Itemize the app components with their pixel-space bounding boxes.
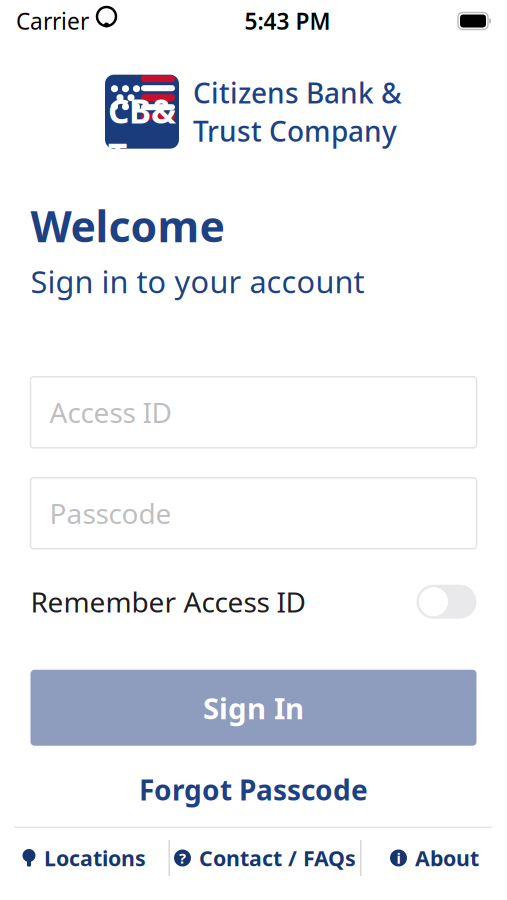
- button[interactable]: ?: [170, 828, 360, 888]
- button[interactable]: i: [361, 828, 507, 888]
- button[interactable]: Locations: [0, 828, 168, 888]
- staticText: Sign In: [203, 688, 304, 727]
- staticText: About: [415, 844, 479, 872]
- staticText: Contact / FAQs: [199, 844, 356, 872]
- staticText: Trust Company: [193, 112, 397, 149]
- button[interactable]: Passcode: [30, 478, 476, 549]
- button[interactable]: Sign In: [30, 670, 476, 746]
- staticText: i: [396, 848, 400, 868]
- staticText: 5:43 PM: [244, 6, 330, 36]
- staticText: Forgot Passcode: [139, 771, 368, 808]
- staticText: Citizens Bank &: [193, 74, 402, 111]
- staticText: ?: [179, 848, 186, 868]
- staticText: Sign in to your account: [30, 261, 364, 302]
- staticText: Access ID: [49, 394, 171, 431]
- button[interactable]: Forgot Passcode: [30, 768, 476, 812]
- staticText: CB&T: [108, 88, 176, 177]
- staticText: Remember Access ID: [30, 583, 305, 620]
- staticText: Welcome: [30, 197, 224, 254]
- button[interactable]: Remember Access ID: [30, 580, 476, 624]
- staticText: Locations: [44, 844, 146, 872]
- button[interactable]: Access ID: [30, 377, 476, 448]
- staticText: Carrier: [16, 6, 89, 36]
- staticText: Passcode: [49, 495, 171, 532]
